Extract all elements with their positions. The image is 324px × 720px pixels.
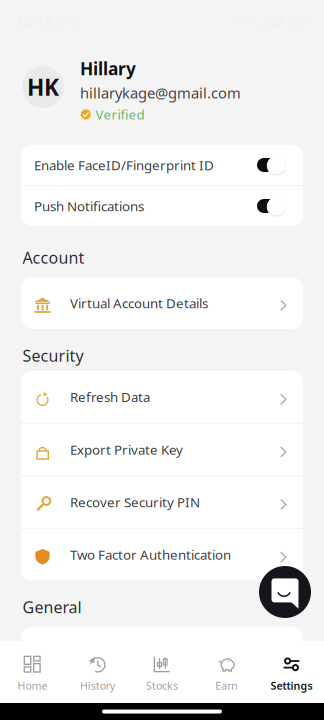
staticText: General <box>22 596 81 618</box>
staticText: Home <box>17 678 47 693</box>
button[interactable]: Virtual Account Details <box>21 277 303 329</box>
staticText: Stocks <box>146 678 178 693</box>
staticText: hillarykage@gmail.com <box>80 83 241 103</box>
staticText: Two Factor Authentication <box>70 546 231 563</box>
button[interactable]: Enable FaceID/Fingerprint ID <box>21 145 303 185</box>
staticText: Hillary <box>80 57 136 80</box>
button[interactable]: Help & Support <box>21 627 303 678</box>
button[interactable]: Settings <box>259 655 324 693</box>
button[interactable]: Push Notifications <box>21 186 303 226</box>
staticText: History <box>80 678 115 693</box>
staticText: Help & Support <box>70 644 165 661</box>
staticText: Settings <box>271 678 313 693</box>
button[interactable]: Stocks <box>130 655 194 693</box>
button[interactable]: Home <box>0 655 65 693</box>
staticText: Recover Security PIN <box>70 493 200 511</box>
staticText: Enable FaceID/Fingerprint ID <box>34 156 214 174</box>
staticText: Virtual Account Details <box>70 294 208 312</box>
staticText: HK <box>27 72 59 102</box>
button[interactable]: Export Private Key <box>21 424 303 475</box>
button[interactable]: Earn <box>194 655 259 693</box>
staticText: Account <box>22 247 84 268</box>
staticText: Export Private Key <box>70 441 183 458</box>
button[interactable]: History <box>65 655 130 693</box>
button[interactable]: Open chat support <box>259 566 311 618</box>
staticText: Push Notifications <box>34 197 144 215</box>
staticText: Verified <box>95 106 144 123</box>
staticText: Refresh Data <box>70 388 150 406</box>
button[interactable]: Refresh Data <box>21 371 303 423</box>
button[interactable]: Recover Security PIN <box>21 476 303 528</box>
staticText: Security <box>22 345 83 366</box>
button[interactable]: Two Factor Authentication <box>21 529 303 580</box>
staticText: Earn <box>215 678 238 693</box>
